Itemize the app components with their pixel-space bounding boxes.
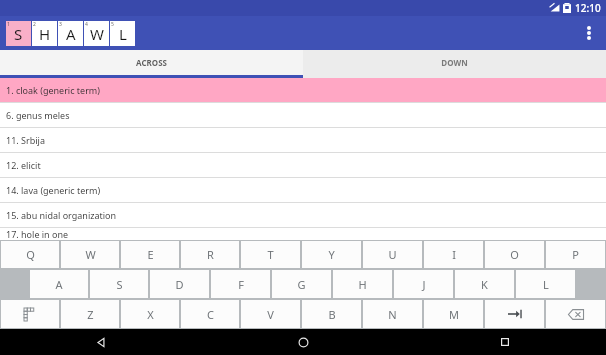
staticText: F xyxy=(238,277,244,292)
button[interactable]: DOWN xyxy=(303,50,606,75)
button[interactable]: More options xyxy=(572,16,606,50)
button[interactable]: L xyxy=(516,270,575,298)
button[interactable]: N xyxy=(363,300,422,328)
staticText: 1 xyxy=(7,21,10,28)
button[interactable]: W xyxy=(61,241,119,268)
staticText: W xyxy=(85,247,96,262)
staticText: J xyxy=(422,277,426,292)
button[interactable]: G xyxy=(272,270,331,298)
button[interactable]: Home xyxy=(202,329,404,355)
staticText: 5 xyxy=(111,21,114,28)
button[interactable]: R xyxy=(181,241,239,268)
button[interactable]: 6. genus meles xyxy=(0,103,606,127)
staticText: U xyxy=(388,247,397,262)
staticText: W xyxy=(90,24,104,44)
staticText: A xyxy=(55,277,63,292)
staticText: S xyxy=(116,277,123,292)
button[interactable]: K xyxy=(455,270,514,298)
staticText: S xyxy=(14,24,23,44)
button[interactable]: F xyxy=(211,270,270,298)
button[interactable]: A xyxy=(30,270,88,298)
button[interactable]: 1 xyxy=(6,21,31,46)
staticText: Q xyxy=(26,247,35,262)
button[interactable]: O xyxy=(485,241,544,268)
button[interactable]: 11. Srbija xyxy=(0,128,606,152)
button[interactable]: P xyxy=(546,241,605,268)
button[interactable]: J xyxy=(394,270,453,298)
staticText: Y xyxy=(328,247,335,262)
staticText: 15. abu nidal organization xyxy=(6,209,117,221)
staticText: 3 xyxy=(59,21,62,28)
staticText: 4 xyxy=(85,21,88,28)
button[interactable]: Delete xyxy=(546,300,605,328)
staticText: 2 xyxy=(33,21,36,28)
staticText: D xyxy=(175,277,184,292)
staticText: B xyxy=(328,307,336,322)
button[interactable]: 5 xyxy=(110,21,135,46)
button[interactable]: 1. cloak (generic term) xyxy=(0,78,606,102)
staticText: C xyxy=(207,307,214,322)
button[interactable]: E xyxy=(121,241,179,268)
button[interactable]: 3 xyxy=(58,21,83,46)
staticText: T xyxy=(267,247,274,262)
staticText: 6. genus meles xyxy=(6,109,70,121)
button[interactable]: D xyxy=(150,270,209,298)
button[interactable]: ACROSS xyxy=(0,50,303,75)
button[interactable]: 14. lava (generic term) xyxy=(0,178,606,202)
button[interactable]: I xyxy=(424,241,483,268)
staticText: M xyxy=(449,307,459,322)
staticText: R xyxy=(207,247,214,262)
button[interactable]: Q xyxy=(1,241,59,268)
button[interactable]: S xyxy=(90,270,148,298)
staticText: N xyxy=(388,307,397,322)
button[interactable]: Back xyxy=(0,329,202,355)
button[interactable]: H xyxy=(333,270,392,298)
staticText: H xyxy=(358,277,367,292)
staticText: 11. Srbija xyxy=(6,134,45,146)
staticText: 17. hole in one xyxy=(6,228,69,240)
button[interactable]: Grid xyxy=(1,300,59,328)
button[interactable]: T xyxy=(241,241,300,268)
staticText: L xyxy=(543,277,549,292)
button[interactable]: 12. elicit xyxy=(0,153,606,177)
staticText: H xyxy=(39,24,51,44)
staticText: L xyxy=(119,24,127,44)
button[interactable]: Recent apps xyxy=(404,329,606,355)
staticText: V xyxy=(267,307,274,322)
staticText: ACROSS xyxy=(136,57,167,68)
staticText: Z xyxy=(87,307,94,322)
button[interactable]: 4 xyxy=(84,21,109,46)
staticText: 14. lava (generic term) xyxy=(6,184,101,196)
button[interactable]: M xyxy=(424,300,483,328)
staticText: E xyxy=(147,247,154,262)
button[interactable]: 15. abu nidal organization xyxy=(0,203,606,227)
button[interactable]: C xyxy=(181,300,239,328)
staticText: P xyxy=(572,247,579,262)
staticText: DOWN xyxy=(441,57,468,68)
staticText: G xyxy=(297,277,306,292)
button[interactable]: 17. hole in one xyxy=(0,228,606,240)
button[interactable]: B xyxy=(302,300,361,328)
staticText: O xyxy=(510,247,519,262)
button[interactable]: Z xyxy=(61,300,119,328)
button[interactable]: V xyxy=(241,300,300,328)
staticText: 1. cloak (generic term) xyxy=(6,84,100,96)
staticText: 12:10 xyxy=(575,1,601,15)
staticText: 12. elicit xyxy=(6,159,41,171)
staticText: A xyxy=(66,24,76,44)
staticText: X xyxy=(147,307,154,322)
button[interactable]: U xyxy=(363,241,422,268)
staticText: K xyxy=(481,277,488,292)
staticText: I xyxy=(452,247,456,262)
button[interactable]: X xyxy=(121,300,179,328)
button[interactable]: 2 xyxy=(32,21,57,46)
button[interactable]: Y xyxy=(302,241,361,268)
button[interactable]: Next clue xyxy=(485,300,544,328)
